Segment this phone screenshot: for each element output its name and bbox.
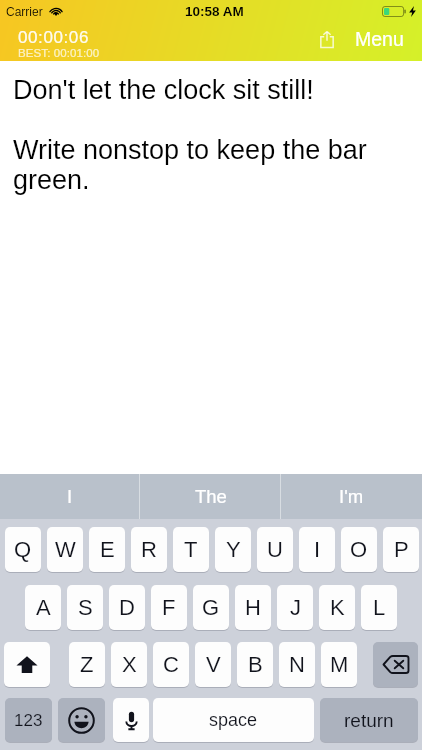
staticText: K xyxy=(330,595,345,620)
button[interactable]: I xyxy=(0,474,140,519)
button[interactable]: I'm xyxy=(281,474,422,519)
button[interactable]: Share xyxy=(313,25,341,53)
button[interactable]: return xyxy=(320,698,418,742)
staticText: return xyxy=(344,710,394,731)
staticText: D xyxy=(119,595,135,620)
staticText: 00:00:06 xyxy=(18,28,89,47)
staticText: Carrier xyxy=(6,5,43,18)
button[interactable]: O xyxy=(341,527,377,572)
staticText: L xyxy=(373,595,386,620)
staticText: R xyxy=(141,537,157,562)
staticText: U xyxy=(267,537,283,562)
button[interactable]: P xyxy=(383,527,419,572)
staticText: V xyxy=(206,652,221,677)
button[interactable]: N xyxy=(279,642,315,687)
staticText: 123 xyxy=(14,711,43,730)
staticText: Z xyxy=(80,652,94,677)
button[interactable]: D xyxy=(109,585,145,630)
button[interactable]: Z xyxy=(69,642,105,687)
staticText: E xyxy=(100,537,115,562)
button[interactable]: G xyxy=(193,585,229,630)
staticText: J xyxy=(290,595,301,620)
staticText: Menu xyxy=(355,28,404,50)
button[interactable]: W xyxy=(47,527,83,572)
staticText: M xyxy=(330,652,349,677)
staticText: X xyxy=(122,652,137,677)
staticText: Don't let the clock sit still! xyxy=(13,75,314,105)
staticText: BEST: 00:01:00 xyxy=(18,47,100,60)
staticText: S xyxy=(78,595,93,620)
button[interactable]: U xyxy=(257,527,293,572)
staticText: 10:58 AM xyxy=(185,4,244,19)
button[interactable]: 123 xyxy=(5,698,52,742)
staticText: F xyxy=(162,595,176,620)
button[interactable]: T xyxy=(173,527,209,572)
staticText: C xyxy=(163,652,179,677)
button[interactable]: Backspace xyxy=(373,642,418,687)
button[interactable]: V xyxy=(195,642,231,687)
button[interactable]: Q xyxy=(5,527,41,572)
staticText: I xyxy=(314,537,321,562)
button[interactable]: L xyxy=(361,585,397,630)
staticText: I xyxy=(67,486,73,507)
button[interactable]: S xyxy=(67,585,103,630)
button[interactable]: Shift xyxy=(4,642,50,687)
button[interactable]: Y xyxy=(215,527,251,572)
staticText: The xyxy=(195,486,227,507)
button[interactable]: J xyxy=(277,585,313,630)
button[interactable]: Menu xyxy=(353,24,406,54)
staticText: Y xyxy=(226,537,241,562)
button[interactable]: F xyxy=(151,585,187,630)
button[interactable]: I xyxy=(299,527,335,572)
button[interactable]: Dictation xyxy=(113,698,149,742)
staticText: Write nonstop to keep the bar green. xyxy=(13,135,382,195)
button[interactable]: H xyxy=(235,585,271,630)
button[interactable]: Emoji xyxy=(58,698,105,742)
staticText: W xyxy=(55,537,76,562)
staticText: I'm xyxy=(339,486,364,507)
button[interactable]: The xyxy=(140,474,281,519)
button[interactable]: A xyxy=(25,585,61,630)
staticText: H xyxy=(245,595,261,620)
button[interactable]: C xyxy=(153,642,189,687)
button[interactable]: B xyxy=(237,642,273,687)
staticText: G xyxy=(202,595,220,620)
staticText: N xyxy=(289,652,305,677)
button[interactable]: X xyxy=(111,642,147,687)
staticText: A xyxy=(36,595,51,620)
staticText: O xyxy=(350,537,368,562)
staticText: space xyxy=(209,710,258,730)
button[interactable]: space xyxy=(153,698,314,742)
staticText: B xyxy=(248,652,263,677)
button[interactable]: M xyxy=(321,642,357,687)
button[interactable]: E xyxy=(89,527,125,572)
staticText: P xyxy=(394,537,409,562)
button[interactable]: K xyxy=(319,585,355,630)
staticText: Q xyxy=(14,537,32,562)
staticText: T xyxy=(184,537,198,562)
button[interactable]: R xyxy=(131,527,167,572)
